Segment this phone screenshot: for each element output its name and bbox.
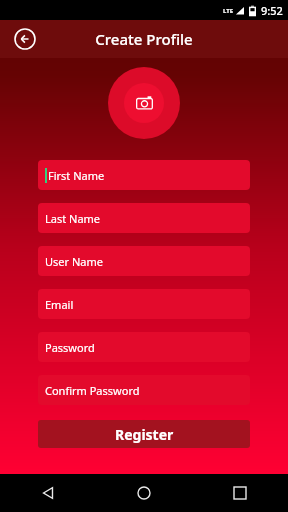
button[interactable]: Register [38, 420, 250, 448]
button[interactable]: Add profile photo [108, 67, 180, 139]
button[interactable]: Confirm Password [38, 375, 250, 405]
staticText: 9:52 [261, 3, 283, 18]
staticText: Create Profile [95, 29, 193, 49]
button[interactable]: Last Name [38, 203, 250, 233]
button[interactable]: Email [38, 289, 250, 319]
button[interactable]: Back [12, 26, 38, 52]
button[interactable]: Home [125, 474, 163, 512]
staticText: First Name [48, 168, 105, 183]
staticText: LTE [223, 7, 234, 15]
button[interactable]: Password [38, 332, 250, 362]
staticText: User Name [45, 254, 103, 269]
staticText: Confirm Password [45, 383, 140, 398]
staticText: Password [45, 340, 95, 355]
staticText: Last Name [45, 211, 101, 226]
staticText: Register [115, 425, 174, 444]
staticText: Email [45, 297, 74, 312]
button[interactable]: Back [29, 474, 67, 512]
button[interactable]: First Name [38, 160, 250, 190]
button[interactable]: Recents [221, 474, 259, 512]
button[interactable]: User Name [38, 246, 250, 276]
